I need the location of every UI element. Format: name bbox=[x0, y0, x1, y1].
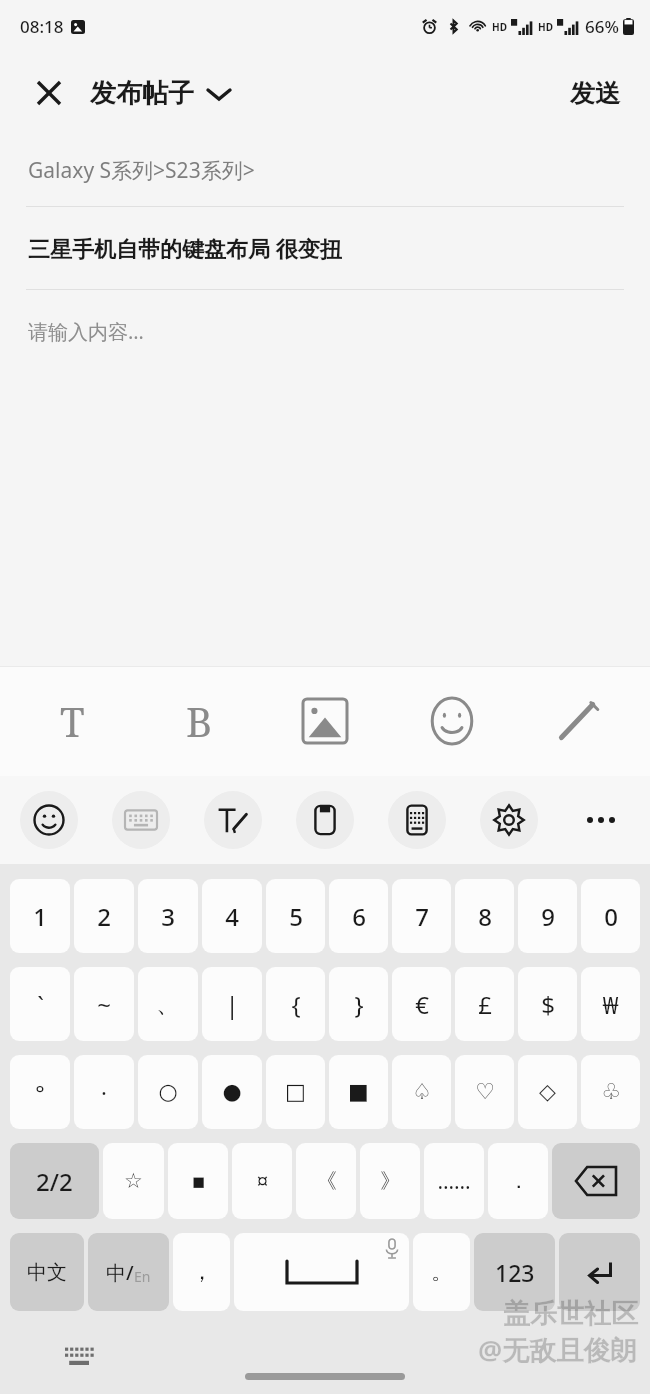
button[interactable]: € bbox=[392, 967, 451, 1041]
button[interactable]: 5 bbox=[266, 879, 325, 953]
button[interactable]: ▪ bbox=[168, 1143, 228, 1219]
button[interactable]: ♧ bbox=[581, 1055, 640, 1129]
button[interactable]: · bbox=[74, 1055, 134, 1129]
button[interactable]: 1 bbox=[10, 879, 70, 953]
staticText: Galaxy S系列>S23系列> bbox=[28, 156, 255, 185]
button[interactable]: 、 bbox=[138, 967, 198, 1041]
staticText: 08:18 bbox=[20, 15, 64, 38]
staticText: ♤ bbox=[412, 1079, 432, 1105]
button[interactable]: } bbox=[329, 967, 388, 1041]
staticText: 2 bbox=[97, 900, 111, 933]
button[interactable]: Clipboard bbox=[296, 791, 354, 849]
button[interactable]: Enter bbox=[559, 1233, 640, 1311]
staticText: 。 bbox=[431, 1258, 453, 1286]
staticText: ~ bbox=[97, 988, 111, 1021]
button[interactable]: $ bbox=[518, 967, 577, 1041]
staticText: 7 bbox=[415, 900, 429, 933]
staticText: ₩ bbox=[602, 988, 619, 1021]
staticText: ， bbox=[191, 1258, 213, 1286]
staticText: ° bbox=[35, 1077, 45, 1107]
button[interactable]: 《 bbox=[296, 1143, 356, 1219]
button[interactable]: 3 bbox=[138, 879, 198, 953]
staticText: 9 bbox=[541, 900, 555, 933]
button[interactable]: ♤ bbox=[392, 1055, 451, 1129]
button[interactable]: Backspace bbox=[552, 1143, 640, 1219]
button[interactable]: 》 bbox=[360, 1143, 420, 1219]
button[interactable]: 9 bbox=[518, 879, 577, 953]
button[interactable]: ● bbox=[202, 1055, 262, 1129]
button[interactable]: Handwriting bbox=[204, 791, 262, 849]
button[interactable]: …… bbox=[424, 1143, 484, 1219]
staticText: $ bbox=[541, 988, 555, 1021]
button[interactable]: 6 bbox=[329, 879, 388, 953]
button[interactable]: 三星手机自带的键盘布局 很变扭 bbox=[0, 207, 650, 289]
button[interactable]: ` bbox=[10, 967, 70, 1041]
staticText: 123 bbox=[495, 1257, 535, 1288]
staticText: ` bbox=[37, 988, 44, 1021]
button[interactable]: ₩ bbox=[581, 967, 640, 1041]
button[interactable]: ☆ bbox=[103, 1143, 164, 1219]
button[interactable]: 2/2 bbox=[10, 1143, 99, 1219]
button[interactable]: 2 bbox=[74, 879, 134, 953]
staticText: | bbox=[225, 988, 239, 1021]
button[interactable]: Settings bbox=[480, 791, 538, 849]
staticText: 三星手机自带的键盘布局 很变扭 bbox=[28, 233, 342, 263]
button[interactable]: ° bbox=[10, 1055, 70, 1129]
button[interactable]: ~ bbox=[74, 967, 134, 1041]
staticText: 3 bbox=[161, 900, 175, 933]
staticText: } bbox=[354, 988, 364, 1021]
button[interactable]: 发布帖子 bbox=[90, 77, 232, 110]
staticText: HD bbox=[492, 20, 507, 34]
button[interactable]: □ bbox=[266, 1055, 325, 1129]
staticText: 》 bbox=[380, 1168, 401, 1194]
button[interactable]: ■ bbox=[329, 1055, 388, 1129]
staticText: 1 bbox=[33, 900, 47, 933]
staticText: 6 bbox=[352, 900, 366, 933]
button[interactable]: ． bbox=[488, 1143, 548, 1219]
staticText: ☆ bbox=[124, 1169, 143, 1193]
button[interactable]: 7 bbox=[392, 879, 451, 953]
staticText: ♧ bbox=[601, 1079, 621, 1105]
staticText: 盖乐世社区 bbox=[503, 1297, 638, 1331]
button[interactable]: 请输入内容… bbox=[0, 290, 650, 666]
button[interactable]: 中文 bbox=[10, 1233, 84, 1311]
staticText: □ bbox=[285, 1079, 306, 1105]
staticText: { bbox=[291, 988, 301, 1021]
button[interactable]: Close bbox=[26, 70, 72, 116]
button[interactable]: ♡ bbox=[455, 1055, 514, 1129]
staticText: 4 bbox=[225, 900, 239, 933]
button[interactable]: 123 bbox=[474, 1233, 555, 1311]
staticText: ¤ bbox=[256, 1167, 269, 1196]
staticText: En bbox=[134, 1267, 151, 1286]
button[interactable]: Space bbox=[234, 1233, 409, 1311]
button[interactable]: Emoji bbox=[420, 689, 484, 753]
button[interactable]: | bbox=[202, 967, 262, 1041]
staticText: T bbox=[60, 694, 85, 748]
button[interactable]: 4 bbox=[202, 879, 262, 953]
button[interactable]: T bbox=[40, 689, 104, 753]
button[interactable]: B bbox=[167, 689, 231, 753]
button[interactable]: { bbox=[266, 967, 325, 1041]
button[interactable]: Hide keyboard bbox=[58, 1334, 102, 1378]
button[interactable]: 中/ bbox=[88, 1233, 169, 1311]
button[interactable]: ， bbox=[173, 1233, 230, 1311]
button[interactable]: 0 bbox=[581, 879, 640, 953]
button[interactable]: 8 bbox=[455, 879, 514, 953]
staticText: £ bbox=[478, 988, 492, 1021]
button[interactable]: Galaxy S系列>S23系列> bbox=[0, 134, 650, 206]
button[interactable]: 发送 bbox=[562, 70, 628, 117]
button[interactable]: Insert image bbox=[293, 689, 357, 753]
button[interactable]: Keyboard layout bbox=[112, 791, 170, 849]
staticText: 请输入内容… bbox=[28, 318, 144, 345]
staticText: …… bbox=[437, 1167, 471, 1196]
button[interactable]: ¤ bbox=[232, 1143, 292, 1219]
button[interactable]: 。 bbox=[413, 1233, 470, 1311]
button[interactable]: Split keyboard bbox=[388, 791, 446, 849]
button[interactable]: More options bbox=[572, 791, 630, 849]
button[interactable]: Sticker bbox=[20, 791, 78, 849]
button[interactable]: ○ bbox=[138, 1055, 198, 1129]
button[interactable]: Draw bbox=[546, 689, 610, 753]
staticText: HD bbox=[538, 20, 553, 34]
button[interactable]: ◇ bbox=[518, 1055, 577, 1129]
button[interactable]: £ bbox=[455, 967, 514, 1041]
